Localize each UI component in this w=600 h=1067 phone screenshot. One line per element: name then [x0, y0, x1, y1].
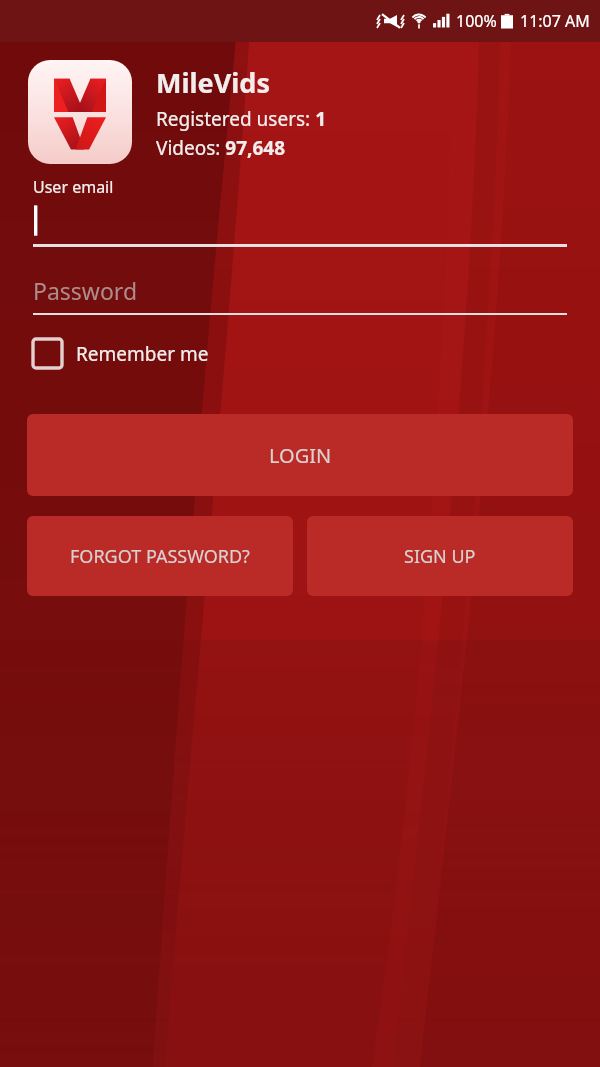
button[interactable]: Remember me [33, 339, 209, 368]
button[interactable]: SIGN UP [307, 516, 573, 596]
staticText: Registered users: 1 [156, 106, 327, 132]
button[interactable]: Password [33, 271, 567, 315]
staticText: SIGN UP [404, 544, 476, 569]
staticText: FORGOT PASSWORD? [70, 544, 250, 569]
staticText: LOGIN [269, 442, 332, 469]
staticText: Remember me [76, 341, 209, 367]
staticText: 100% [456, 10, 497, 32]
staticText: MileVids [156, 64, 270, 101]
staticText: User email [33, 176, 114, 198]
button[interactable]: FORGOT PASSWORD? [27, 516, 293, 596]
button[interactable]: LOGIN [27, 414, 573, 496]
button[interactable]: User email input [33, 198, 567, 244]
staticText: Videos: 97,648 [156, 135, 286, 161]
staticText: 11:07 AM [520, 10, 590, 32]
staticText: Password [33, 275, 138, 306]
